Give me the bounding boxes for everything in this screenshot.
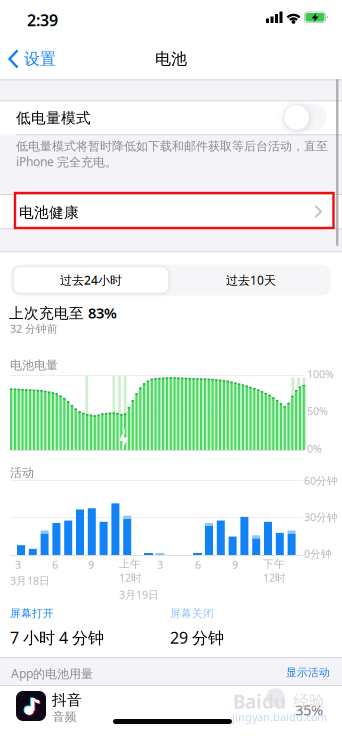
staticText: 30分钟: [304, 510, 338, 524]
staticText: 35%: [295, 700, 323, 719]
staticText: 12时: [263, 570, 286, 585]
staticText: jingyan.baidu.com: [232, 710, 327, 724]
staticText: Baidu: [233, 689, 286, 714]
staticText: App的电池用量: [11, 665, 93, 681]
staticText: 显示活动: [286, 666, 330, 679]
staticText: 电池: [155, 49, 187, 69]
staticText: 抖音: [52, 691, 82, 709]
staticText: 低电量模式将暂时降低如下载和邮件获取等后台活动，直至 iPhone 完全充电。: [16, 139, 328, 170]
staticText: 0分钟: [304, 546, 332, 561]
staticText: 12时: [119, 570, 142, 585]
button[interactable]: 电池健康: [0, 194, 342, 228]
button[interactable]: 过去24小时: [13, 266, 169, 293]
staticText: 3: [15, 557, 21, 572]
button[interactable]: 过去10天: [171, 264, 331, 295]
button[interactable]: 返回设置: [8, 49, 56, 69]
staticText: 0%: [307, 441, 322, 456]
staticText: 9: [232, 557, 238, 572]
staticText: 上次充电至 83%: [9, 303, 117, 322]
staticText: 3月18日: [10, 573, 50, 588]
button[interactable]: 显示活动: [286, 666, 330, 679]
staticText: 过去10天: [226, 272, 276, 288]
staticText: 经验: [293, 691, 325, 711]
staticText: 9: [88, 557, 94, 572]
staticText: 屏幕打开: [10, 607, 54, 620]
staticText: 音频: [52, 709, 76, 724]
staticText: 电池健康: [19, 203, 79, 221]
staticText: 低电量模式: [16, 109, 91, 127]
staticText: 7 小时 4 分钟: [10, 627, 104, 648]
staticText: 6: [52, 557, 58, 572]
button[interactable]: 低电量模式: [283, 104, 327, 131]
staticText: 过去24小时: [60, 272, 122, 288]
staticText: 设置: [24, 49, 56, 69]
staticText: 活动: [10, 465, 34, 480]
staticText: 上午: [119, 557, 141, 571]
button[interactable]: 抖音: [0, 685, 342, 738]
staticText: 下午: [263, 557, 285, 571]
staticText: 60分钟: [304, 473, 338, 488]
staticText: 3: [157, 557, 163, 572]
staticText: 100%: [307, 367, 334, 381]
staticText: 电池电量: [10, 358, 58, 373]
staticText: 3月19日: [119, 587, 159, 602]
staticText: 屏幕关闭: [170, 607, 214, 620]
staticText: 50%: [307, 404, 328, 418]
staticText: 2:39: [27, 9, 58, 31]
staticText: 32 分钟前: [10, 321, 58, 336]
staticText: 6: [195, 557, 201, 572]
staticText: 29 分钟: [170, 627, 224, 648]
